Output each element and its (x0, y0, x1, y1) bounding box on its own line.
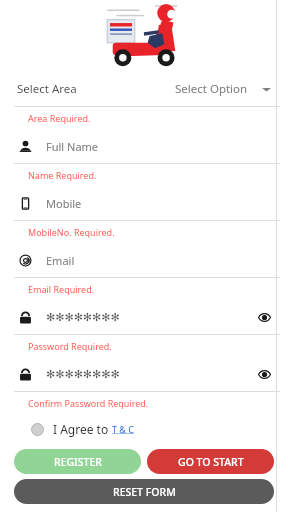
button[interactable]: Mobile (0, 186, 288, 220)
button[interactable]: Select Area (0, 72, 288, 106)
button[interactable]: Email (0, 243, 288, 277)
staticText: Confirm Password Required. (28, 397, 149, 409)
staticText: Select Area (17, 81, 77, 97)
button[interactable]: RESET FORM (14, 479, 274, 504)
staticText: Email (46, 253, 75, 268)
staticText: Name Required. (28, 169, 97, 181)
staticText: ✻✻✻✻✻✻✻✻ (46, 368, 120, 381)
staticText: GO TO START (178, 455, 244, 469)
staticText: Select Option (175, 81, 248, 97)
staticText: Full Name (46, 139, 99, 154)
staticText: Password Required. (28, 340, 112, 352)
button[interactable]: ✻✻✻✻✻✻✻✻ (0, 300, 288, 334)
button[interactable]: Full Name (0, 129, 288, 163)
button[interactable]: T & C (112, 423, 134, 435)
button[interactable]: I Agree to (0, 416, 288, 442)
staticText: MobileNo. Required. (28, 226, 115, 238)
staticText: ✻✻✻✻✻✻✻✻ (46, 311, 120, 324)
button[interactable]: Show password (254, 364, 274, 384)
staticText: Area Required. (28, 112, 91, 124)
button[interactable]: REGISTER (14, 449, 141, 474)
button[interactable]: GO TO START (147, 449, 274, 474)
button[interactable]: ✻✻✻✻✻✻✻✻ (0, 357, 288, 391)
button[interactable]: Show password (254, 307, 274, 327)
staticText: Mobile (46, 196, 82, 211)
staticText: REGISTER (54, 455, 102, 469)
staticText: Email Required. (28, 283, 95, 295)
staticText: I Agree to (53, 421, 112, 437)
staticText: RESET FORM (113, 485, 176, 499)
